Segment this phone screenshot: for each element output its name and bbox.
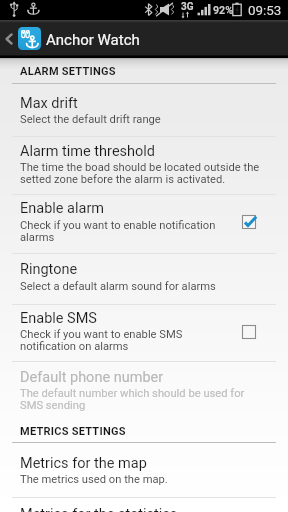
staticText: Max drift [20,95,78,112]
staticText: The metrics used on the map. [20,473,168,486]
staticText: The default number which should be used … [20,387,245,400]
staticText: Check if you want to enable notification [20,219,216,232]
button[interactable] [0,254,288,304]
staticText: Select a default alarm sound for alarms [20,280,216,293]
staticText: 09:53 [248,3,282,19]
button[interactable] [0,303,288,361]
button[interactable]: Navigate up [0,20,18,57]
staticText: Enable SMS [20,310,97,327]
staticText: alarms [20,231,55,244]
staticText: Metrics for the statistics [20,506,178,512]
staticText: 3G [181,1,194,13]
staticText: Alarm time threshold [20,143,156,160]
staticText: Check if you want to enable SMS [20,328,183,341]
staticText: Anchor Watch [46,31,140,49]
staticText: SMS sending [20,399,86,412]
staticText: Metrics for the map [20,455,147,472]
staticText: Enable alarm [20,200,105,217]
staticText: Select the default drift range [20,113,161,126]
button[interactable] [0,499,288,512]
button[interactable] [0,362,288,512]
button[interactable] [0,194,288,253]
button[interactable] [0,88,288,136]
button[interactable] [0,136,288,195]
staticText: ALARM SETTINGS [20,65,116,78]
staticText: Ringtone [20,261,78,278]
staticText: Default phone number [20,369,164,386]
button[interactable] [0,448,288,497]
staticText: setted zone before the alarm is activate… [20,173,226,186]
staticText: 92% [213,4,233,16]
staticText: METRICS SETTINGS [20,425,126,438]
staticText: The time the boad should be located outs… [20,161,260,174]
staticText: notification on alarms [20,340,129,353]
